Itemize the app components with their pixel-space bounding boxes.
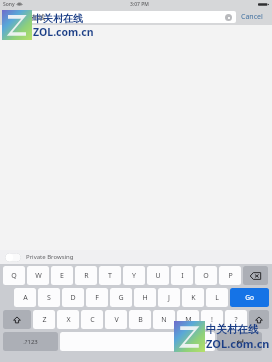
staticText: N xyxy=(161,315,167,325)
staticText: ZOL.com.cn xyxy=(33,25,94,39)
button[interactable]: M xyxy=(177,310,199,329)
button[interactable]: 中关村在线 xyxy=(4,11,236,23)
staticText: B xyxy=(138,315,143,325)
button[interactable]: O xyxy=(195,266,217,285)
button[interactable]: ! xyxy=(201,310,223,329)
button[interactable]: S xyxy=(38,288,60,307)
staticText: S xyxy=(47,293,51,303)
staticText: Q xyxy=(11,271,17,281)
staticText: 中关村在线 xyxy=(206,323,259,336)
staticText: .?123 xyxy=(23,338,38,346)
button[interactable]: D xyxy=(62,288,84,307)
staticText: T xyxy=(108,271,112,281)
button[interactable]: Key xyxy=(217,332,262,351)
staticText: G xyxy=(118,293,124,303)
staticText: Private Browsing xyxy=(26,253,74,261)
button[interactable]: X xyxy=(57,310,79,329)
button[interactable]: .?123 xyxy=(3,332,58,351)
button[interactable]: Private Browsing toggle xyxy=(5,253,21,262)
staticText: ? xyxy=(234,315,238,325)
button[interactable]: U xyxy=(147,266,169,285)
staticText: X xyxy=(66,315,71,325)
button[interactable]: Key xyxy=(249,310,269,329)
staticText: E xyxy=(60,271,64,281)
staticText: O xyxy=(203,271,209,281)
staticText: F xyxy=(95,293,99,303)
staticText: Sony xyxy=(3,1,15,8)
button[interactable]: N xyxy=(153,310,175,329)
staticText: H xyxy=(142,293,148,303)
staticText: I xyxy=(181,271,184,281)
staticText: 中关村在线 xyxy=(33,12,83,25)
button[interactable]: W xyxy=(27,266,49,285)
button[interactable]: G xyxy=(110,288,132,307)
button[interactable]: A xyxy=(14,288,36,307)
staticText: Cancel xyxy=(241,12,263,22)
button[interactable]: Key xyxy=(243,266,268,285)
button[interactable]: J xyxy=(158,288,180,307)
button[interactable]: E xyxy=(51,266,73,285)
staticText: ! xyxy=(211,315,213,325)
staticText: K xyxy=(191,293,196,303)
staticText: R xyxy=(84,271,89,281)
staticText: 3:07 PM xyxy=(130,1,149,8)
button[interactable]: Key xyxy=(3,310,31,329)
button[interactable]: Clear text xyxy=(225,14,232,21)
staticText: J xyxy=(168,293,170,303)
staticText: W xyxy=(35,271,42,281)
button[interactable]: F xyxy=(86,288,108,307)
button[interactable]: Go xyxy=(230,288,269,307)
staticText: A xyxy=(23,293,28,303)
staticText: Y xyxy=(132,271,136,281)
staticText: D xyxy=(70,293,76,303)
button[interactable]: I xyxy=(171,266,193,285)
staticText: Z xyxy=(42,315,47,325)
staticText: 中关村在线 xyxy=(8,13,46,22)
button[interactable]: ? xyxy=(225,310,247,329)
button[interactable]: Z xyxy=(33,310,55,329)
button[interactable]: K xyxy=(182,288,204,307)
staticText: Go xyxy=(245,293,254,302)
button[interactable]: T xyxy=(99,266,121,285)
button[interactable]: L xyxy=(206,288,228,307)
staticText: M xyxy=(185,315,192,325)
staticText: P xyxy=(228,271,233,281)
button[interactable]: Y xyxy=(123,266,145,285)
button[interactable]: Q xyxy=(3,266,25,285)
button[interactable]: V xyxy=(105,310,127,329)
button[interactable]: C xyxy=(81,310,103,329)
button[interactable]: P xyxy=(219,266,241,285)
staticText: L xyxy=(215,293,219,303)
staticText: ZOL.com.cn xyxy=(206,336,270,351)
button[interactable]: R xyxy=(75,266,97,285)
button[interactable]: Key xyxy=(60,332,215,351)
staticText: U xyxy=(155,271,161,281)
button[interactable]: H xyxy=(134,288,156,307)
staticText: V xyxy=(114,315,119,325)
button[interactable]: Cancel xyxy=(236,10,268,24)
staticText: C xyxy=(90,315,95,325)
button[interactable]: B xyxy=(129,310,151,329)
